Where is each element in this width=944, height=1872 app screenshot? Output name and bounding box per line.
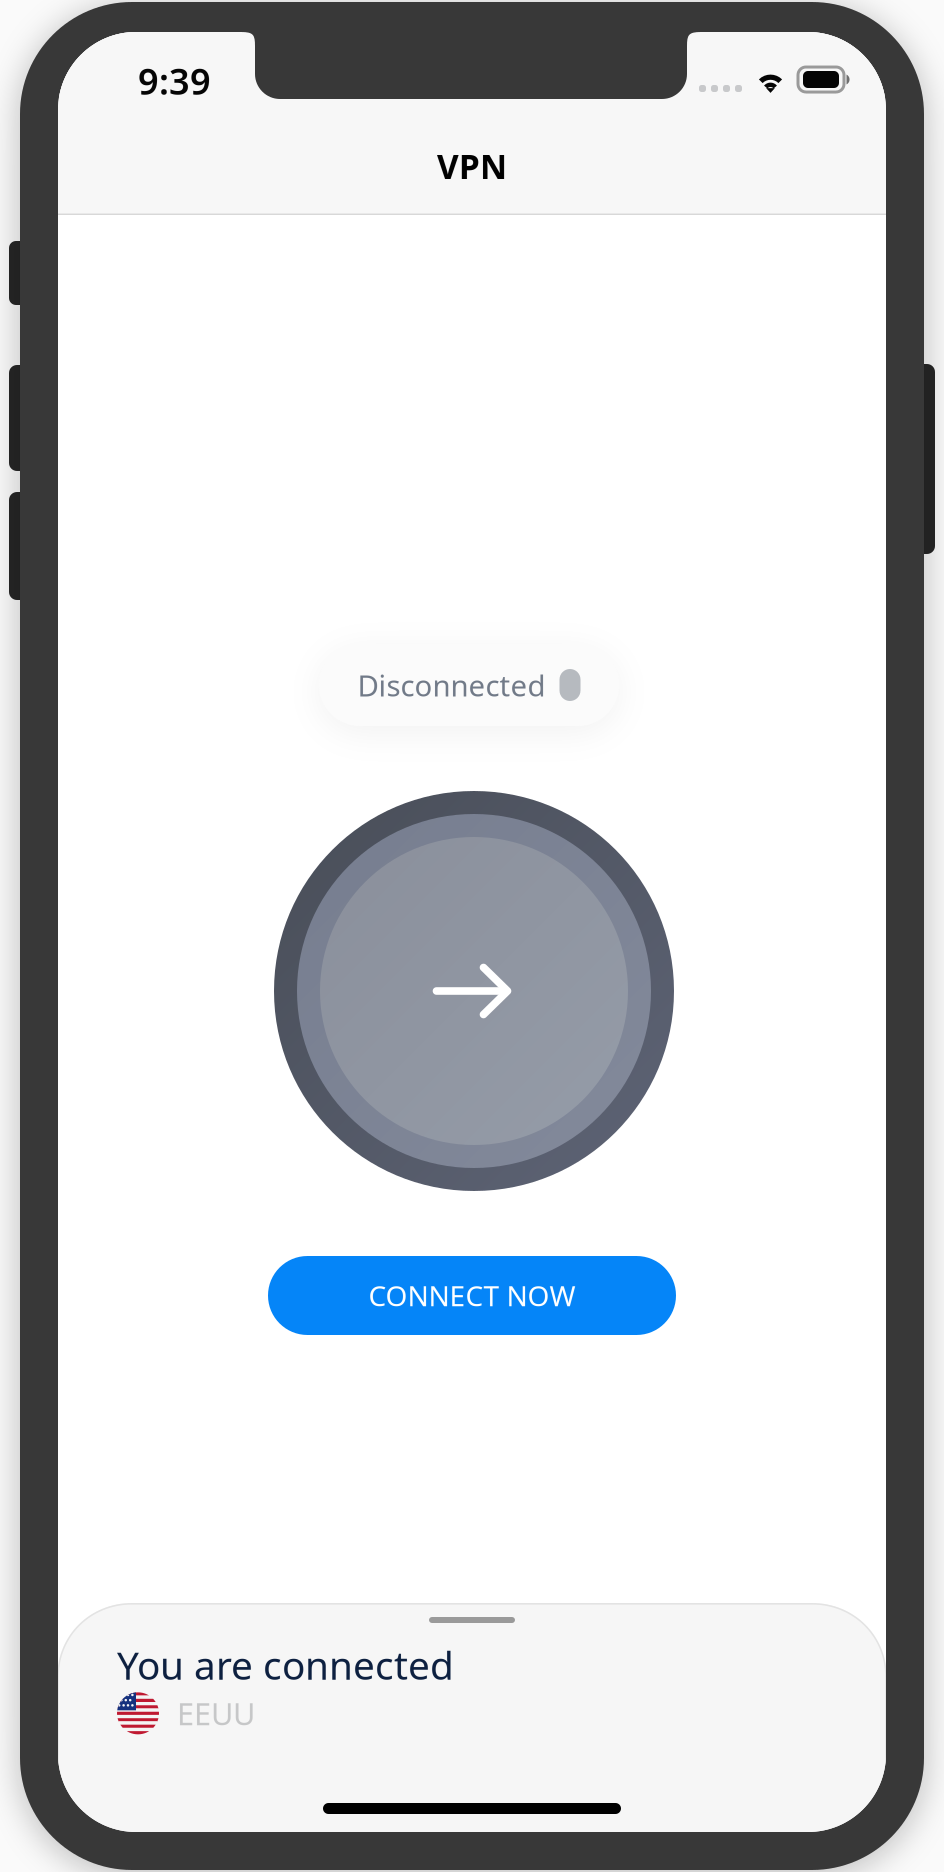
button[interactable]: CONNECT NOW	[268, 1256, 676, 1335]
staticText: EEUU	[177, 1693, 255, 1734]
staticText: Disconnected	[357, 665, 545, 704]
staticText: CONNECT NOW	[368, 1277, 575, 1314]
staticText: 9:39	[138, 57, 211, 105]
button[interactable]: Disconnected	[319, 644, 619, 726]
button[interactable]: Connect	[274, 791, 674, 1191]
staticText: You are connected	[117, 1639, 454, 1690]
staticText: VPN	[437, 144, 507, 188]
button[interactable]: You are connected	[58, 1603, 886, 1832]
